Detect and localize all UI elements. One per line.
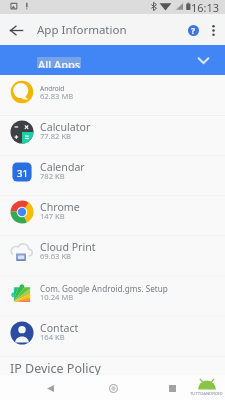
staticText: TUTTOANDROID (190, 391, 223, 397)
staticText: Com. Google Android.gms. Setup (40, 283, 168, 294)
button[interactable]: Contact (0, 316, 225, 356)
staticText: 31 (17, 167, 28, 180)
button[interactable]: 31 (0, 155, 225, 195)
staticText: All Apps (38, 57, 81, 68)
button[interactable]: Recents (165, 381, 179, 395)
staticText: 16:13 (191, 0, 220, 14)
staticText: App Information (37, 22, 127, 38)
button[interactable]: Help (184, 21, 203, 40)
button[interactable]: Com. Google Android.gms. Setup (0, 276, 225, 316)
button[interactable]: Back (7, 21, 25, 39)
staticText: 782 KB (40, 171, 65, 181)
button[interactable]: Cloud Print (0, 235, 225, 275)
staticText: Android (40, 84, 65, 93)
button[interactable]: Calculator (0, 115, 225, 155)
staticText: ? (191, 25, 196, 36)
button[interactable]: IP Device Policy (10, 360, 101, 377)
staticText: Calendar (40, 160, 85, 174)
button[interactable]: More options (203, 20, 223, 40)
staticText: 147 KB (40, 211, 65, 221)
button[interactable]: Back (43, 381, 57, 395)
staticText: Calculator (40, 120, 91, 134)
staticText: Cloud Print (40, 240, 96, 254)
button[interactable]: Chrome (0, 195, 225, 235)
staticText: 77.82 KB (40, 131, 72, 141)
button[interactable]: Home (106, 381, 120, 395)
button[interactable]: All Apps (0, 45, 225, 75)
staticText: 10.24 MB (40, 292, 74, 302)
button[interactable]: Android (0, 75, 225, 115)
staticText: Contact (40, 321, 79, 335)
staticText: 164 KB (40, 332, 65, 342)
staticText: Chrome (40, 200, 80, 214)
staticText: 62.83 MB (40, 91, 74, 101)
staticText: 69.63 KB (40, 251, 72, 261)
